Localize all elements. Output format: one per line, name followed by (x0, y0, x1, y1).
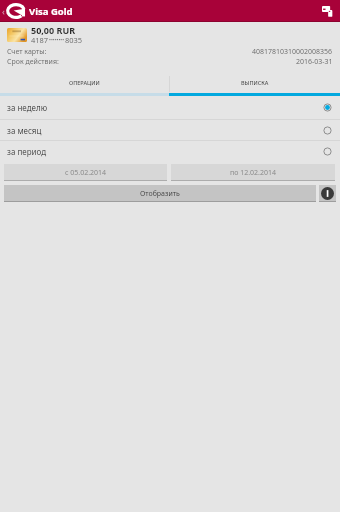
button[interactable]: за период (0, 141, 340, 161)
staticText: за неделю (7, 102, 48, 113)
staticText: 2016-03-31 (296, 57, 333, 67)
staticText: •••••••• (49, 37, 65, 44)
button[interactable]: ОПЕРАЦИИ (0, 72, 169, 96)
button[interactable]: с 05.02.2014 (4, 164, 167, 181)
staticText: 50,00 RUR (31, 24, 76, 36)
staticText: ‹ (2, 5, 5, 17)
staticText: Срок действия: (7, 57, 59, 67)
staticText: 40817810310002008356 (252, 47, 333, 57)
button[interactable]: по 12.02.2014 (171, 164, 335, 181)
staticText: Отобразить (140, 189, 180, 199)
staticText: за месяц (7, 125, 42, 136)
staticText: с 05.02.2014 (65, 168, 107, 178)
button[interactable]: Info (319, 185, 336, 202)
button[interactable]: Отобразить (4, 185, 316, 202)
staticText: Visa Gold (29, 5, 73, 18)
staticText: ВЫПИСКА (241, 79, 269, 86)
button[interactable]: за неделю (0, 96, 340, 119)
button[interactable]: за месяц (0, 120, 340, 140)
staticText: 8035 (65, 35, 83, 45)
staticText: по 12.02.2014 (230, 168, 277, 178)
button[interactable]: Cards (316, 0, 338, 22)
button[interactable]: ВЫПИСКА (169, 72, 340, 96)
staticText: Счет карты: (7, 47, 47, 57)
staticText: за период (7, 146, 47, 157)
button[interactable]: ‹ (0, 3, 77, 19)
staticText: 4187 (31, 35, 49, 45)
staticText: ОПЕРАЦИИ (69, 79, 100, 86)
